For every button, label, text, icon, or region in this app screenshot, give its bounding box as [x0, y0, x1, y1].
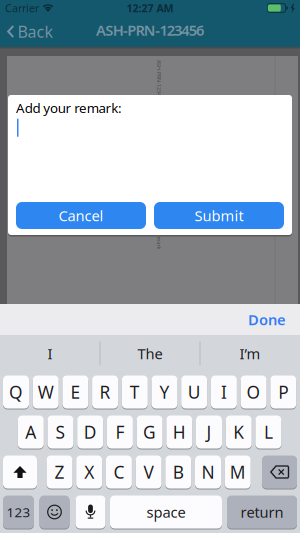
staticText: space [146, 502, 185, 522]
staticText: Y [159, 380, 169, 403]
button[interactable]: N [195, 455, 221, 489]
button[interactable]: E [62, 375, 88, 409]
button[interactable]: D [77, 415, 103, 449]
staticText: M [230, 460, 246, 483]
staticText: G [143, 420, 156, 443]
staticText: C [113, 460, 124, 483]
staticText: Done [248, 310, 286, 329]
button[interactable]: Q [3, 375, 29, 409]
staticText: T [130, 380, 140, 403]
staticText: Back [17, 21, 53, 42]
staticText: H [173, 420, 186, 443]
button[interactable]: The [102, 335, 198, 372]
staticText: E [70, 380, 80, 403]
button[interactable]: P [270, 375, 296, 409]
staticText: N [201, 460, 214, 483]
button[interactable]: Emoji [39, 495, 69, 529]
button[interactable]: V [136, 455, 162, 489]
button[interactable]: K [226, 415, 252, 449]
button[interactable]: H [166, 415, 192, 449]
staticText: A [25, 420, 36, 443]
button[interactable]: Dictate [75, 495, 105, 529]
staticText: I [47, 344, 52, 363]
button[interactable]: Done [248, 304, 300, 335]
button[interactable]: Numbers [3, 495, 34, 529]
button[interactable]: Delete [262, 455, 297, 489]
staticText: return [240, 502, 283, 522]
button[interactable]: U [181, 375, 207, 409]
button[interactable]: Z [46, 455, 72, 489]
staticText: I’m [239, 344, 260, 363]
staticText: Submit [194, 206, 243, 225]
button[interactable]: T [122, 375, 148, 409]
staticText: I [221, 380, 227, 403]
staticText: ASH-PRN-123456 [96, 20, 204, 40]
button[interactable]: R [92, 375, 118, 409]
button[interactable]: Cancel [16, 202, 146, 229]
staticText: 123 [6, 503, 30, 521]
button[interactable]: Shift [3, 455, 37, 489]
staticText: Cancel [58, 206, 103, 225]
staticText: J [206, 420, 211, 443]
button[interactable]: S [47, 415, 73, 449]
staticText: Add your remark: [16, 99, 122, 117]
button[interactable]: I’m [202, 335, 298, 372]
staticText: X [84, 460, 94, 483]
staticText: R [100, 380, 111, 403]
staticText: ASH-PRN-123456 [138, 77, 180, 85]
button[interactable]: Back [0, 16, 53, 47]
button[interactable]: L [255, 415, 281, 449]
staticText: U [188, 380, 201, 403]
staticText: 12:27 AM [126, 1, 173, 15]
staticText: L [264, 420, 273, 443]
button[interactable]: return [227, 495, 297, 529]
staticText: O [247, 380, 261, 403]
button[interactable]: A [18, 415, 44, 449]
staticText: The [137, 344, 162, 363]
button[interactable]: F [107, 415, 133, 449]
button[interactable]: O [241, 375, 267, 409]
staticText: D [84, 420, 97, 443]
button[interactable]: W [33, 375, 59, 409]
staticText: Carrier [5, 1, 39, 15]
staticText: F [115, 420, 124, 443]
staticText: mark [152, 239, 165, 247]
button[interactable]: Y [151, 375, 177, 409]
staticText: P [278, 380, 288, 403]
button[interactable]: I [211, 375, 237, 409]
staticText: V [144, 460, 154, 483]
button[interactable]: G [137, 415, 163, 449]
button[interactable]: C [106, 455, 132, 489]
staticText: W [38, 380, 54, 403]
staticText: S [55, 420, 65, 443]
staticText: Q [9, 380, 23, 403]
button[interactable]: X [76, 455, 102, 489]
button[interactable]: M [225, 455, 251, 489]
button[interactable]: B [165, 455, 191, 489]
button[interactable]: Submit [154, 202, 284, 229]
button[interactable]: space [110, 495, 222, 529]
button[interactable]: J [196, 415, 222, 449]
staticText: K [233, 420, 244, 443]
staticText: B [173, 460, 184, 483]
button[interactable]: I [2, 335, 98, 372]
staticText: Z [54, 460, 64, 483]
